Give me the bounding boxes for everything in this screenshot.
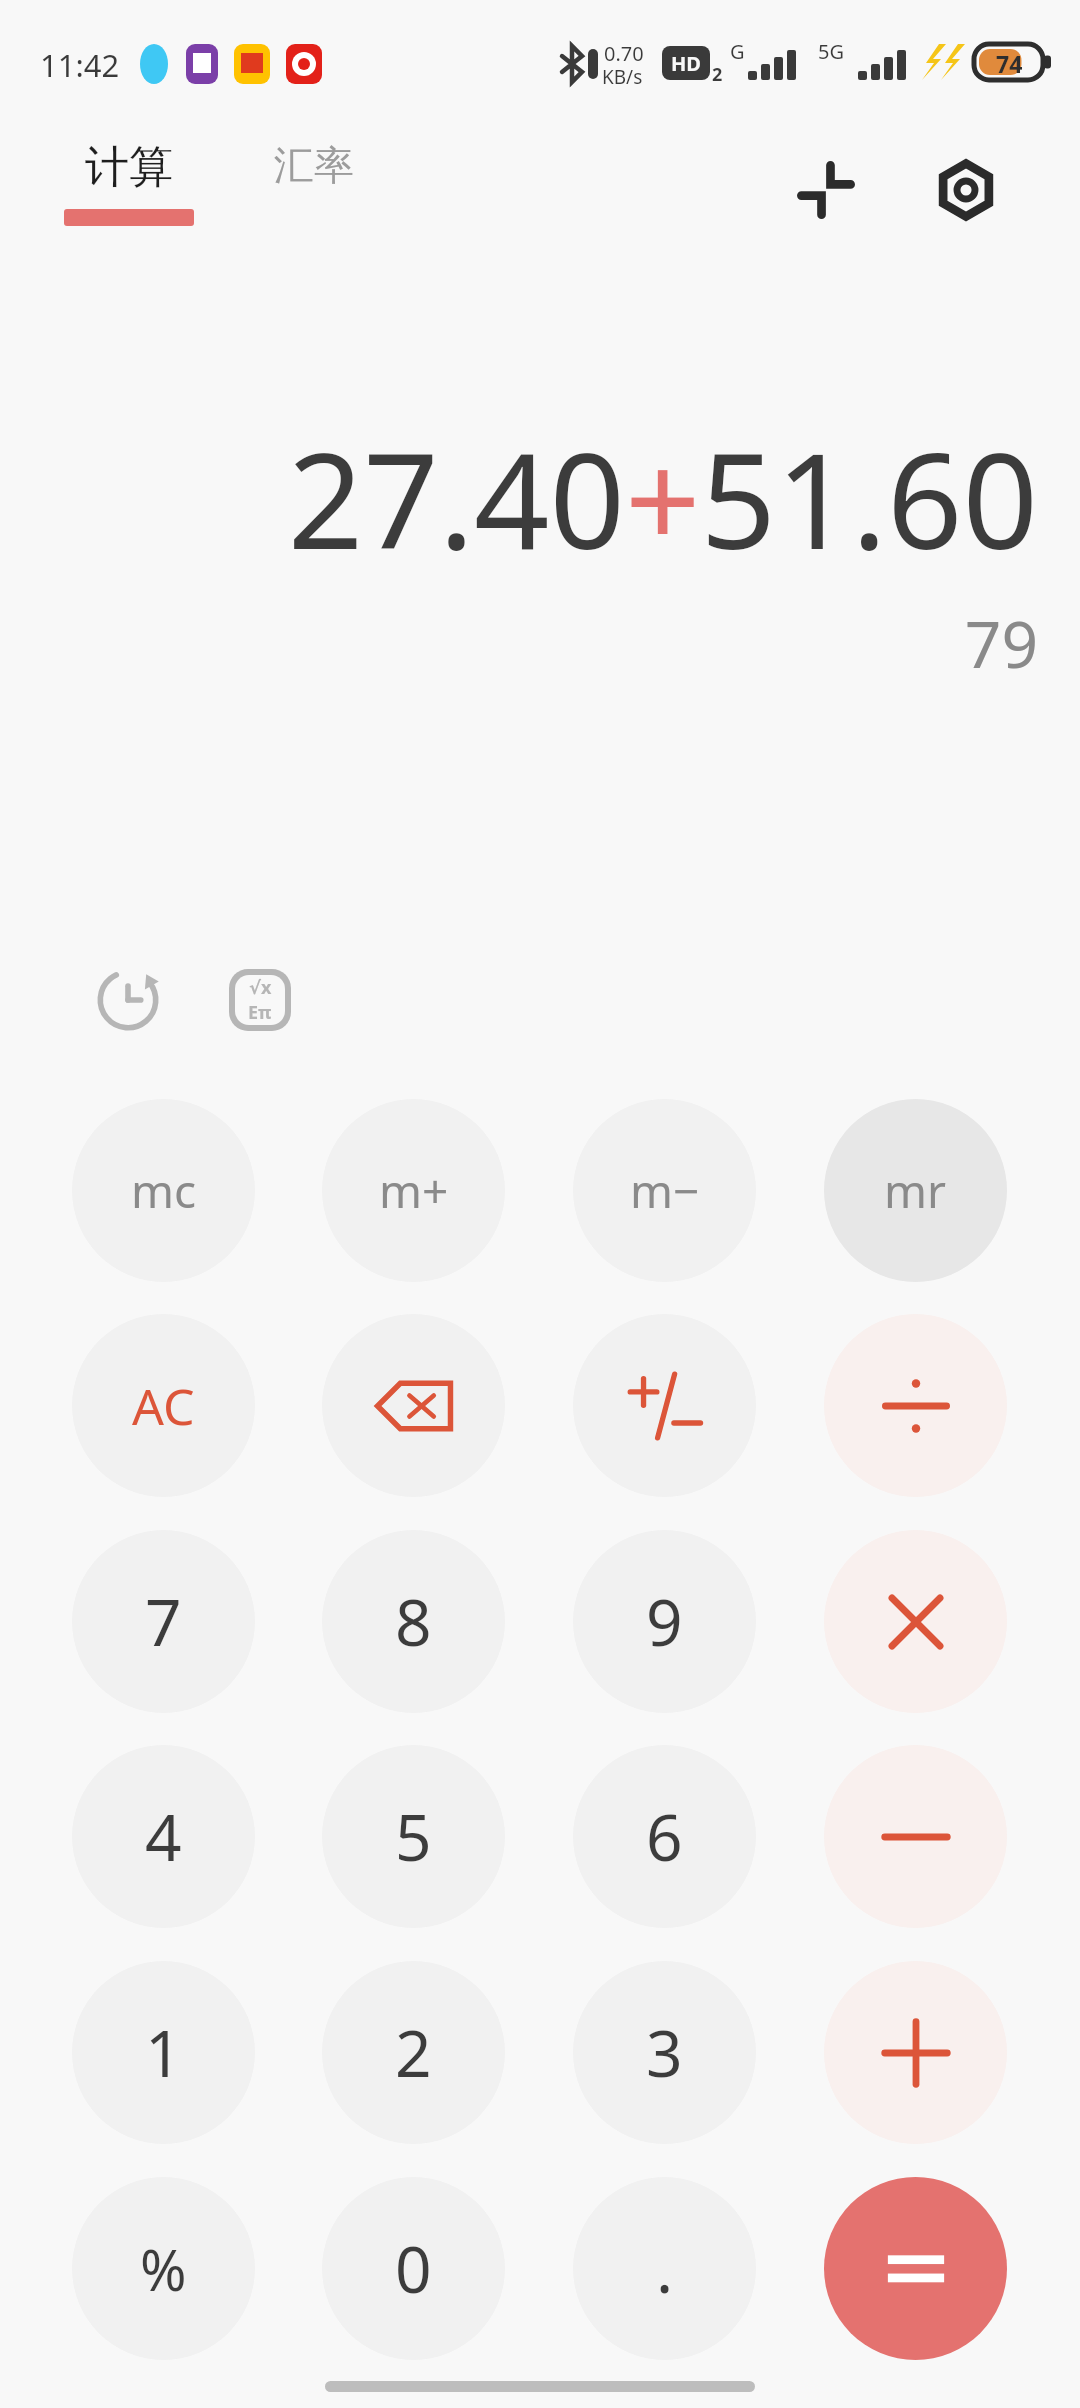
button[interactable]: Settings [916, 140, 1016, 240]
staticText: 6 [646, 1793, 683, 1880]
button[interactable]: History [80, 952, 176, 1048]
staticText: 9 [646, 1578, 683, 1665]
staticText: 计算 [85, 140, 173, 195]
staticText: 4 [145, 1793, 182, 1880]
staticText: 3 [646, 2009, 683, 2096]
button[interactable]: Plus [824, 1961, 1007, 2144]
staticText: 2 [712, 62, 723, 87]
button[interactable]: AC [72, 1314, 255, 1497]
staticText: 汇率 [274, 140, 354, 190]
staticText: HD [671, 50, 701, 77]
staticText: 8 [395, 1578, 432, 1665]
staticText: % [140, 2231, 187, 2307]
button[interactable]: Delete [322, 1314, 505, 1497]
staticText: 1 [145, 2009, 182, 2096]
button[interactable]: 3 [573, 1961, 756, 2144]
button[interactable]: 5 [322, 1745, 505, 1928]
button[interactable]: 2 [322, 1961, 505, 2144]
staticText: . [656, 2225, 674, 2312]
staticText: G [730, 38, 745, 65]
staticText: 7 [145, 1578, 182, 1665]
button[interactable]: mc [72, 1099, 255, 1282]
staticText: Eπ [248, 1000, 272, 1025]
button[interactable]: 0 [322, 2177, 505, 2360]
button[interactable]: Scientific mode [212, 952, 308, 1048]
button[interactable]: 8 [322, 1530, 505, 1713]
button[interactable]: Equals [824, 2177, 1007, 2360]
staticText: 5G [818, 38, 844, 65]
button[interactable]: 汇率 [264, 140, 364, 190]
staticText: mr [884, 1159, 947, 1222]
staticText: 2 [395, 2009, 432, 2096]
button[interactable]: 7 [72, 1530, 255, 1713]
button[interactable]: . [573, 2177, 756, 2360]
staticText: 79 [0, 600, 1038, 687]
staticText: m− [630, 1159, 700, 1222]
button[interactable]: Expand [776, 140, 876, 240]
button[interactable]: Divide [824, 1314, 1007, 1497]
button[interactable]: Multiply [824, 1530, 1007, 1713]
button[interactable]: m+ [322, 1099, 505, 1282]
staticText: 0 [395, 2225, 432, 2312]
staticText: KB/s [602, 64, 643, 90]
button[interactable]: 9 [573, 1530, 756, 1713]
button[interactable]: m− [573, 1099, 756, 1282]
staticText: 74 [996, 48, 1023, 79]
staticText: m+ [379, 1159, 449, 1222]
staticText: 0.70 [604, 40, 644, 67]
button[interactable]: 6 [573, 1745, 756, 1928]
staticText: AC [132, 1372, 195, 1440]
button[interactable]: 4 [72, 1745, 255, 1928]
button[interactable]: Plus minus [573, 1314, 756, 1497]
staticText: 27.40+51.60 [0, 408, 1038, 588]
button[interactable]: % [72, 2177, 255, 2360]
button[interactable]: 1 [72, 1961, 255, 2144]
staticText: √x [249, 975, 272, 1000]
button[interactable]: 计算 [64, 140, 194, 226]
button[interactable]: Minus [824, 1745, 1007, 1928]
staticText: 11:42 [40, 44, 120, 86]
staticText: mc [131, 1159, 197, 1222]
staticText: 5 [395, 1793, 432, 1880]
button[interactable]: mr [824, 1099, 1007, 1282]
